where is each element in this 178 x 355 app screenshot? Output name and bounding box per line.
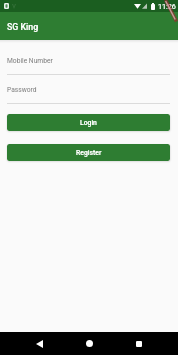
- staticText: SG King: [7, 22, 39, 32]
- staticText: Mobile Number: [7, 57, 53, 65]
- button[interactable]: Home: [78, 332, 100, 355]
- button[interactable]: Back: [28, 332, 50, 355]
- staticText: 11:26: [158, 2, 176, 10]
- button[interactable]: Login: [7, 114, 170, 131]
- button[interactable]: Recents: [128, 332, 150, 355]
- staticText: Register: [76, 149, 102, 157]
- button[interactable]: Register: [7, 144, 170, 161]
- staticText: Login: [80, 119, 97, 127]
- staticText: Password: [7, 86, 37, 94]
